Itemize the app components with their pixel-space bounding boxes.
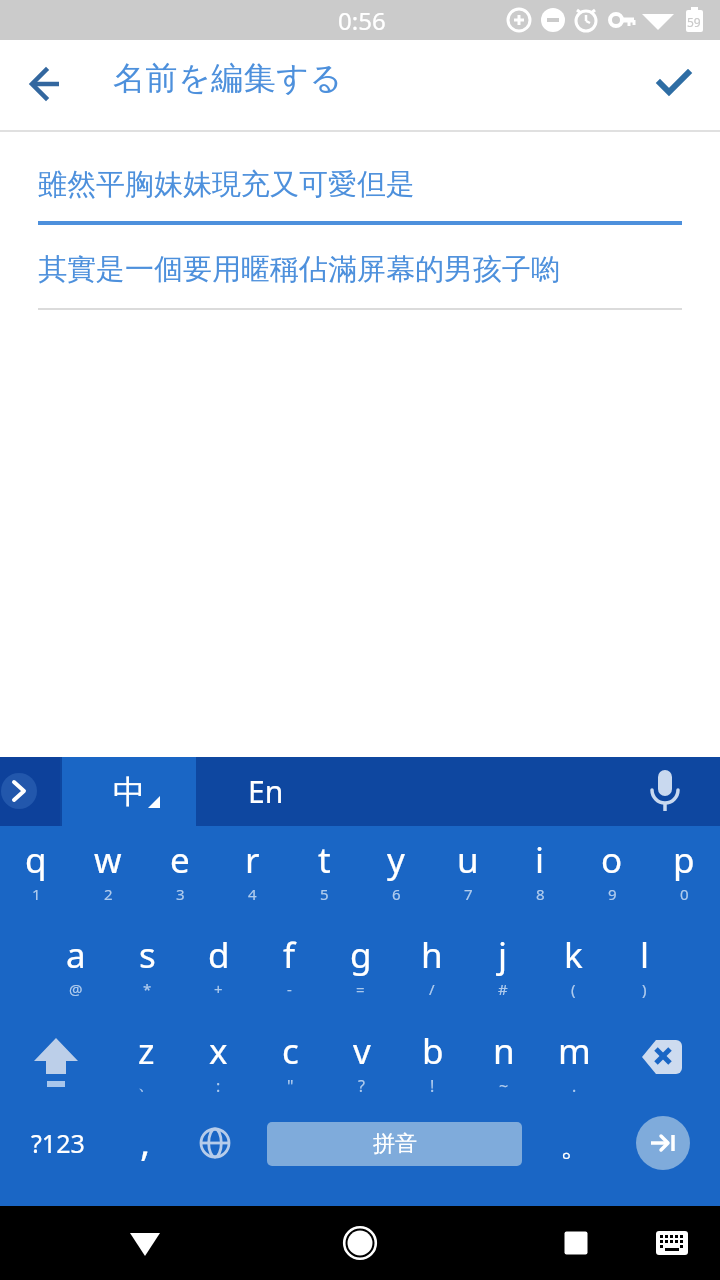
button[interactable]: x (182, 1027, 254, 1097)
staticText: f (283, 931, 296, 979)
button[interactable]: j (467, 931, 538, 999)
staticText: y (387, 836, 405, 884)
button[interactable]: f (254, 931, 325, 999)
button[interactable]: i (504, 836, 576, 904)
staticText: ( (571, 979, 576, 999)
staticText: c (282, 1027, 299, 1075)
staticText: z (138, 1027, 155, 1075)
button[interactable]: a (40, 931, 112, 999)
staticText: u (457, 836, 479, 884)
staticText: t (318, 836, 331, 884)
staticText: 4 (248, 884, 257, 904)
staticText: q (25, 836, 47, 884)
staticText: ~ (499, 1075, 509, 1097)
button[interactable]: m (539, 1027, 610, 1097)
staticText: i (535, 836, 545, 884)
button[interactable]: q (0, 836, 72, 904)
staticText: " (287, 1075, 294, 1097)
staticText: 中 (113, 772, 145, 812)
staticText: * (143, 979, 152, 999)
staticText: 1 (32, 884, 41, 904)
staticText: = (356, 979, 365, 999)
staticText: , (140, 1115, 151, 1167)
button[interactable]: ?123 (18, 1113, 98, 1173)
staticText: 。 (560, 1127, 590, 1165)
staticText: l (640, 931, 650, 979)
staticText: s (139, 931, 156, 979)
button[interactable]: 中 (62, 757, 196, 826)
button[interactable]: k (538, 931, 609, 999)
button[interactable]: g (325, 931, 396, 999)
button[interactable]: o (576, 836, 648, 904)
button[interactable]: w (72, 836, 144, 904)
staticText: 0 (680, 884, 689, 904)
button[interactable] (16, 56, 72, 112)
staticText: + (214, 979, 223, 999)
button[interactable]: n (468, 1027, 539, 1097)
staticText: - (287, 979, 292, 999)
staticText: 拼音 (373, 1130, 417, 1158)
button[interactable] (105, 1206, 185, 1280)
button[interactable]: 拼音 (267, 1122, 522, 1166)
button[interactable]: s (112, 931, 183, 999)
staticText: 5 (320, 884, 329, 904)
button[interactable]: h (396, 931, 467, 999)
staticText: j (498, 931, 508, 979)
staticText: 0:56 (338, 4, 386, 37)
staticText: 、 (138, 1075, 154, 1095)
staticText: o (601, 836, 623, 884)
staticText: p (673, 836, 695, 884)
button[interactable] (320, 1206, 400, 1280)
button[interactable]: v (326, 1027, 397, 1097)
button[interactable]: 其實是一個要用暱稱佔滿屏幕的男孩子喲 (38, 251, 560, 288)
staticText: 名前を編集する (113, 58, 343, 98)
staticText: ?123 (31, 1126, 85, 1160)
button[interactable] (536, 1206, 616, 1280)
staticText: : (216, 1075, 221, 1097)
button[interactable]: y (360, 836, 432, 904)
staticText: ! (430, 1075, 435, 1097)
button[interactable]: b (397, 1027, 468, 1097)
staticText: v (353, 1027, 371, 1075)
staticText: 9 (608, 884, 617, 904)
button[interactable]: c (254, 1027, 326, 1097)
button[interactable] (636, 1116, 690, 1170)
staticText: x (209, 1027, 228, 1075)
staticText: g (350, 931, 372, 979)
button[interactable]: r (216, 836, 288, 904)
button[interactable] (648, 56, 704, 112)
button[interactable] (625, 1026, 705, 1096)
button[interactable]: 。 (545, 1111, 605, 1181)
staticText: ? (358, 1075, 365, 1097)
button[interactable] (0, 757, 60, 826)
button[interactable]: d (183, 931, 254, 999)
staticText: w (94, 836, 122, 884)
button[interactable]: En (196, 757, 336, 826)
staticText: b (422, 1027, 444, 1075)
button[interactable]: , (115, 1106, 175, 1176)
staticText: 7 (464, 884, 473, 904)
staticText: . (572, 1075, 577, 1097)
staticText: @ (69, 979, 83, 999)
staticText: m (558, 1027, 591, 1075)
button[interactable] (185, 1116, 245, 1186)
button[interactable]: e (144, 836, 216, 904)
staticText: n (493, 1027, 515, 1075)
button[interactable]: u (432, 836, 504, 904)
button[interactable]: 雖然平胸妹妹現充又可愛但是 (38, 166, 415, 203)
button[interactable]: l (609, 931, 680, 999)
button[interactable] (635, 757, 695, 826)
button[interactable]: t (288, 836, 360, 904)
button[interactable] (16, 1026, 96, 1096)
staticText: En (248, 771, 284, 812)
button[interactable]: z (110, 1027, 182, 1095)
staticText: 8 (536, 884, 545, 904)
button[interactable] (632, 1206, 712, 1280)
staticText: / (429, 979, 435, 999)
staticText: d (208, 931, 230, 979)
button[interactable]: p (648, 836, 720, 904)
staticText: h (421, 931, 443, 979)
staticText: k (564, 931, 583, 979)
staticText: e (170, 836, 190, 884)
staticText: 3 (176, 884, 185, 904)
